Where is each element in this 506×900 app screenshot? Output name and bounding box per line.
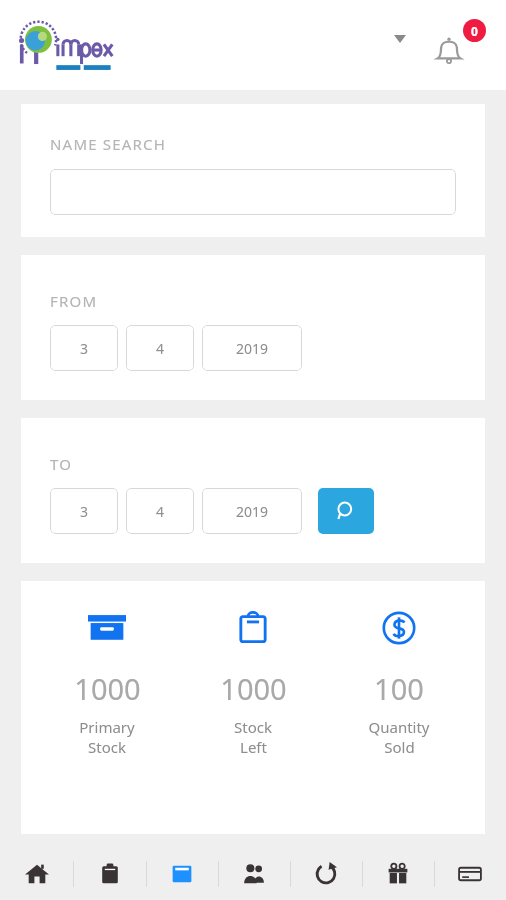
button[interactable]: Home bbox=[0, 848, 73, 900]
staticText: 0 bbox=[471, 23, 478, 39]
button[interactable]: 100 bbox=[339, 609, 459, 757]
button[interactable]: Menu bbox=[386, 25, 414, 53]
button[interactable]: 1000 bbox=[193, 609, 313, 757]
staticText: 4 bbox=[156, 339, 165, 358]
button[interactable]: 4 bbox=[126, 325, 194, 371]
staticText: 4 bbox=[156, 502, 165, 521]
button[interactable]: Orders bbox=[73, 848, 146, 900]
staticText: Sold bbox=[384, 737, 415, 757]
staticText: 1000 bbox=[74, 669, 141, 708]
staticText: 1000 bbox=[220, 669, 287, 708]
staticText: Primary bbox=[79, 717, 135, 737]
button[interactable]: 1000 bbox=[47, 609, 167, 757]
staticText: FROM bbox=[50, 291, 98, 311]
button[interactable]: Offers bbox=[362, 848, 434, 900]
button[interactable]: Payments bbox=[434, 848, 506, 900]
button[interactable]: 2019 bbox=[202, 325, 302, 371]
button[interactable]: 3 bbox=[50, 325, 118, 371]
staticText: 2019 bbox=[236, 339, 269, 358]
staticText: 2019 bbox=[236, 502, 269, 521]
staticText: 100 bbox=[374, 669, 424, 708]
staticText: TO bbox=[50, 454, 73, 474]
button[interactable]: 4 bbox=[126, 488, 194, 534]
staticText: Left bbox=[240, 737, 267, 757]
staticText: Stock bbox=[234, 717, 272, 737]
button[interactable]: Notifications bbox=[434, 19, 486, 71]
button[interactable] bbox=[50, 169, 456, 215]
staticText: 3 bbox=[80, 339, 89, 358]
staticText: 3 bbox=[80, 502, 89, 521]
staticText: Stock bbox=[88, 737, 126, 757]
button[interactable]: 2019 bbox=[202, 488, 302, 534]
button[interactable]: Catalog bbox=[146, 848, 218, 900]
button[interactable]: 3 bbox=[50, 488, 118, 534]
button[interactable]: Refresh bbox=[290, 848, 362, 900]
button[interactable]: Customers bbox=[218, 848, 290, 900]
staticText: NAME SEARCH bbox=[50, 134, 167, 154]
button[interactable]: Search bbox=[318, 488, 374, 534]
staticText: Quantity bbox=[368, 717, 430, 737]
